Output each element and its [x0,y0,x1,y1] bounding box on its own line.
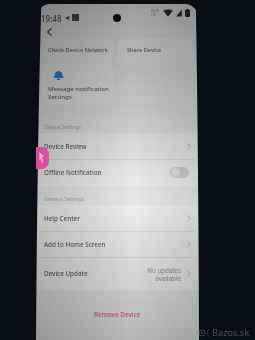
staticText: Device Review [44,142,87,151]
staticText: ( [207,327,210,338]
button[interactable]: Floating assistant [36,147,49,169]
staticText: Remove Device [94,310,141,319]
staticText: Help Center [44,214,80,223]
button[interactable]: Share Device [117,38,194,62]
button[interactable]: Remove Device [36,303,199,325]
button[interactable]: Back [41,23,58,40]
staticText: Check Device Network [48,46,108,54]
button[interactable]: Offline Notification [36,159,199,185]
staticText: No updates available [147,266,181,282]
button[interactable]: Message notification Settings [42,62,113,104]
staticText: Message notification Settings [48,84,109,101]
staticText: General Settings [44,195,85,202]
staticText: Device Update [44,269,88,278]
staticText: Offline Notification [44,168,102,177]
staticText: Add to Home Screen [44,240,106,249]
staticText: Device Settings [44,123,82,130]
button[interactable]: Device Review [36,133,199,159]
staticText: Share Device [127,46,162,54]
button[interactable]: Check Device Network [42,38,113,62]
staticText: LTE [151,13,156,17]
button[interactable]: Device Update [36,257,199,290]
button[interactable]: Add to Home Screen [36,231,199,257]
staticText: 19:48 [41,13,62,24]
staticText: Bazos.sk [212,326,250,339]
staticText: VoLTE [151,9,159,13]
button[interactable]: Help Center [36,205,199,231]
